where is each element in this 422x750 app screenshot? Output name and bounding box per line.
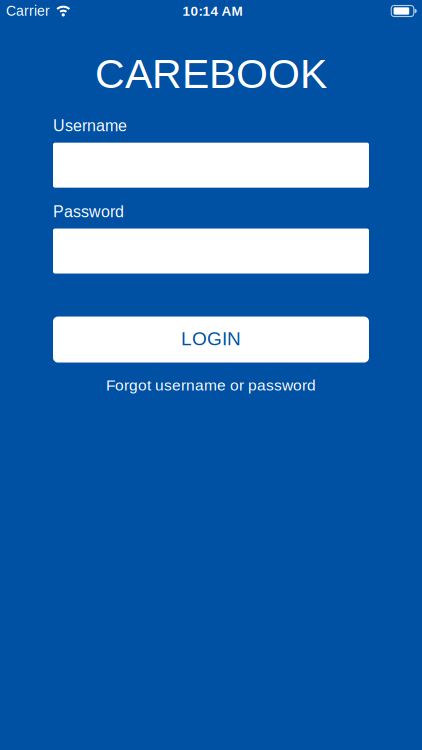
staticText: Password — [53, 203, 124, 221]
staticText: LOGIN — [181, 328, 241, 349]
button[interactable]: Forgot username or password — [53, 377, 369, 394]
staticText: Forgot username or password — [106, 377, 316, 394]
staticText: Username — [53, 117, 127, 135]
staticText: Carrier — [6, 3, 50, 19]
button[interactable]: Username — [53, 143, 369, 188]
staticText: 10:14 AM — [182, 3, 242, 19]
staticText: CAREBOOK — [95, 51, 327, 97]
button[interactable]: Password — [53, 229, 369, 274]
button[interactable]: LOGIN — [53, 317, 369, 363]
